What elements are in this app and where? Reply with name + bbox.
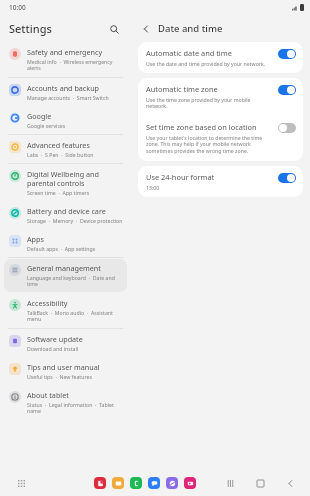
button[interactable]: Search xyxy=(105,20,123,38)
button[interactable]: Off xyxy=(278,123,296,133)
staticText: Screen time · App timers xyxy=(27,189,90,196)
button[interactable]: phone xyxy=(130,477,142,489)
staticText: Accessibility xyxy=(27,298,68,308)
button[interactable]: cam xyxy=(184,477,196,489)
staticText: Medical info · Wireless emergency alerts xyxy=(27,58,123,72)
staticText: Safety and emergency xyxy=(27,47,103,57)
button[interactable]: Home xyxy=(254,477,266,489)
button[interactable]: Safety and emergency xyxy=(4,43,127,76)
button[interactable]: folder xyxy=(112,477,124,489)
staticText: Accounts and backup xyxy=(27,83,99,93)
staticText: Automatic date and time xyxy=(146,48,232,58)
button[interactable]: msg xyxy=(148,477,160,489)
button[interactable]: Back xyxy=(138,21,154,37)
button[interactable]: Accounts and backup xyxy=(4,79,127,105)
button[interactable]: flip xyxy=(94,477,106,489)
staticText: About tablet xyxy=(27,390,69,400)
button[interactable]: Battery and device care xyxy=(4,202,127,228)
staticText: Default apps · App settings xyxy=(27,245,96,252)
staticText: Download and install xyxy=(27,345,79,352)
button[interactable]: Google xyxy=(4,107,127,133)
staticText: Use the time zone provided by your mobil… xyxy=(146,96,272,110)
staticText: Set time zone based on location xyxy=(146,122,257,132)
button[interactable]: On xyxy=(278,49,296,59)
button[interactable]: All apps xyxy=(14,476,28,490)
staticText: TalkBack · Mono audio · Assistant menu xyxy=(27,309,123,323)
button[interactable]: Automatic date and time xyxy=(138,42,303,73)
staticText: Apps xyxy=(27,234,44,244)
button[interactable]: Tips and user manual xyxy=(4,358,127,384)
staticText: Date and time xyxy=(158,22,223,35)
staticText: Battery and device care xyxy=(27,206,106,216)
button[interactable]: On xyxy=(278,173,296,183)
staticText: Settings xyxy=(9,21,52,36)
staticText: Use your tablet's location to determine … xyxy=(146,134,272,155)
button[interactable]: About tablet xyxy=(4,386,127,419)
button[interactable]: Recents xyxy=(224,477,236,489)
staticText: 10:00 xyxy=(9,3,26,12)
button[interactable]: Use 24-hour format xyxy=(138,166,303,197)
button[interactable]: Apps xyxy=(4,230,127,256)
button[interactable]: intern xyxy=(166,477,178,489)
staticText: Google services xyxy=(27,122,66,129)
button[interactable]: On xyxy=(278,85,296,95)
button[interactable]: Digital Wellbeing and parental controls xyxy=(4,165,127,200)
staticText: 13:00 xyxy=(146,184,160,191)
staticText: Use 24-hour format xyxy=(146,172,215,182)
button[interactable]: Software update xyxy=(4,330,127,356)
button[interactable]: Advanced features xyxy=(4,136,127,162)
staticText: Manage accounts · Smart Switch xyxy=(27,94,109,101)
staticText: Use the date and time provided by your n… xyxy=(146,60,266,67)
staticText: Storage · Memory · Device protection xyxy=(27,217,123,224)
staticText: Labs · S Pen · Side button xyxy=(27,151,94,158)
button[interactable]: Automatic time zone xyxy=(138,78,303,116)
button[interactable]: General management xyxy=(4,259,127,292)
staticText: General management xyxy=(27,263,101,273)
staticText: Status · Legal information · Tablet name xyxy=(27,401,123,415)
button[interactable]: Back xyxy=(284,477,296,489)
staticText: Language and keyboard · Date and time xyxy=(27,274,123,288)
staticText: Software update xyxy=(27,334,83,344)
staticText: Google xyxy=(27,111,52,121)
staticText: Tips and user manual xyxy=(27,362,100,372)
staticText: Advanced features xyxy=(27,140,90,150)
staticText: Automatic time zone xyxy=(146,84,218,94)
button[interactable]: Accessibility xyxy=(4,294,127,327)
button[interactable]: Set time zone based on location xyxy=(138,116,303,161)
staticText: Digital Wellbeing and parental controls xyxy=(27,169,123,188)
staticText: Useful tips · New features xyxy=(27,373,92,380)
